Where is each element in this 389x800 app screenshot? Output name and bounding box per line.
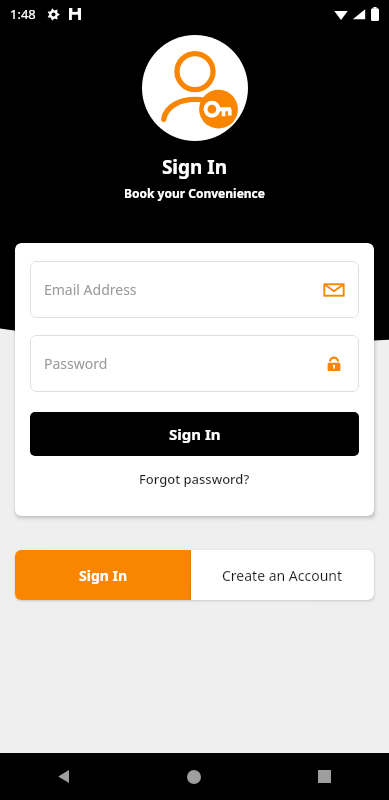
staticText: Book your Convenience bbox=[0, 185, 389, 201]
button[interactable]: Back bbox=[0, 753, 129, 800]
staticText: Forgot password? bbox=[139, 470, 250, 488]
staticText: Create an Account bbox=[222, 566, 343, 585]
staticText: Email Address bbox=[44, 280, 137, 299]
button[interactable]: Sign In bbox=[30, 412, 359, 456]
staticText: Sign In bbox=[0, 154, 389, 180]
other: Password bbox=[323, 353, 345, 375]
button[interactable]: Forgot password? bbox=[131, 465, 258, 493]
button[interactable]: Sign In bbox=[15, 550, 191, 600]
other: Email bbox=[323, 279, 345, 301]
other: Account avatar bbox=[142, 35, 248, 141]
button[interactable]: Password bbox=[30, 335, 359, 392]
staticText: Password bbox=[44, 354, 108, 373]
staticText: Sign In bbox=[169, 424, 221, 444]
staticText: 1:48 bbox=[10, 5, 36, 23]
button[interactable]: Recent apps bbox=[259, 753, 389, 800]
staticText: Sign In bbox=[79, 566, 128, 585]
button[interactable]: Create an Account bbox=[191, 550, 374, 600]
button[interactable]: Email Address bbox=[30, 261, 359, 318]
button[interactable]: Home bbox=[129, 753, 259, 800]
